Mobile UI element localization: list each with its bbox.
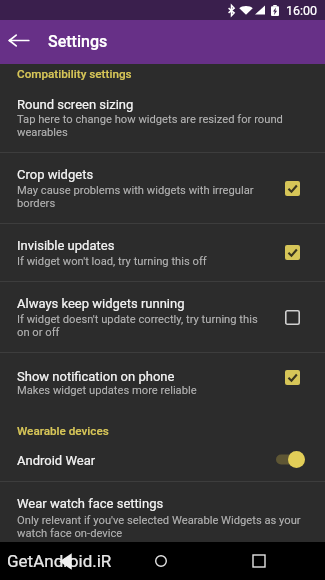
staticText: Crop widgets <box>17 167 94 182</box>
staticText: Always keep widgets running <box>17 296 185 311</box>
button[interactable]: Home <box>142 542 180 580</box>
staticText: Wear watch face settings <box>17 496 164 511</box>
staticText: Show notification on phone <box>17 369 175 384</box>
button[interactable]: Back <box>46 542 84 580</box>
staticText: Android Wear <box>17 453 96 468</box>
staticText: 16:00 <box>286 3 318 18</box>
staticText: If widget doesn't update correctly, try … <box>17 313 272 339</box>
button[interactable]: Recents <box>240 542 278 580</box>
staticText: Tap here to change how widgets are resiz… <box>17 113 307 139</box>
staticText: Invisible updates <box>17 238 115 253</box>
button[interactable]: Always keep widgets running <box>0 282 325 352</box>
staticText: Only relevant if you've selected Wearabl… <box>17 514 309 540</box>
button[interactable]: Back <box>0 20 38 64</box>
staticText: Compatibility settings <box>17 67 132 81</box>
button[interactable]: Android Wear <box>0 441 325 481</box>
staticText: If widget won't load, try turning this o… <box>17 255 207 268</box>
button[interactable]: Show notification on phone <box>0 353 325 401</box>
staticText: Settings <box>48 32 108 51</box>
button[interactable]: Round screen sizing <box>0 88 325 152</box>
button[interactable]: Invisible updates <box>0 224 325 281</box>
staticText: GetAndroid.iR <box>7 551 112 571</box>
button[interactable]: Wear watch face settings <box>0 482 325 542</box>
staticText: Round screen sizing <box>17 97 134 112</box>
staticText: Makes widget updates more reliable <box>17 384 197 397</box>
staticText: May cause problems with widgets with irr… <box>17 184 272 210</box>
staticText: Wearable devices <box>17 424 109 438</box>
button[interactable]: Crop widgets <box>0 153 325 223</box>
